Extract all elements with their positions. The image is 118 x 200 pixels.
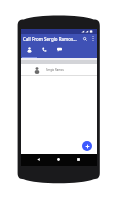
staticText: Call From Sergio Ramos... <box>23 36 77 42</box>
button[interactable]: Back <box>28 153 48 165</box>
button[interactable]: Home <box>48 153 68 165</box>
button[interactable]: Recents <box>68 153 88 165</box>
button[interactable]: New call <box>82 141 92 151</box>
button[interactable]: Sergio Ramos <box>21 64 97 76</box>
button[interactable]: Calls tab <box>37 43 52 58</box>
staticText: Sergio Ramos <box>46 68 64 72</box>
button[interactable]: Contacts tab <box>22 43 37 58</box>
button[interactable]: Search <box>81 34 89 43</box>
button[interactable]: Messages tab <box>52 43 67 58</box>
button[interactable]: More options <box>89 34 96 43</box>
